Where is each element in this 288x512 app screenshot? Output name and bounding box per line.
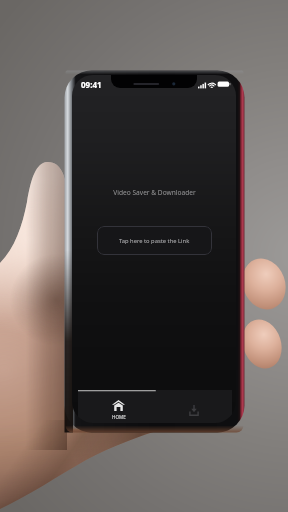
button[interactable]: Downloads — [155, 390, 232, 423]
staticText: Tap here to paste the Link — [119, 237, 190, 245]
staticText: Video Saver & Downloader — [113, 188, 196, 197]
staticText: HOME — [112, 414, 126, 420]
staticText: 09:41 — [81, 79, 102, 90]
button[interactable]: Tap here to paste the Link — [97, 226, 212, 255]
button[interactable]: HOME — [78, 390, 155, 423]
